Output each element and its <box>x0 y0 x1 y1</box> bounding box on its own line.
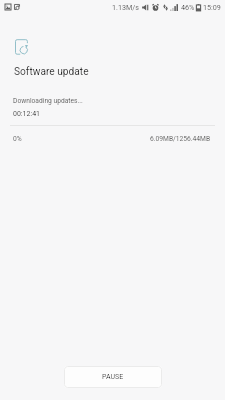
button[interactable]: PAUSE <box>64 366 162 388</box>
staticText: PAUSE <box>102 373 124 381</box>
staticText: 1.13M/s <box>112 3 139 11</box>
staticText: 6.09MB/1256.44MB <box>150 135 211 143</box>
staticText: 00:12:41 <box>13 110 40 118</box>
staticText: Downloading updates... <box>13 97 83 105</box>
staticText: 46% <box>181 3 195 11</box>
staticText: 15:09 <box>203 3 221 11</box>
staticText: Software update <box>14 66 89 78</box>
staticText: 0% <box>13 135 22 143</box>
